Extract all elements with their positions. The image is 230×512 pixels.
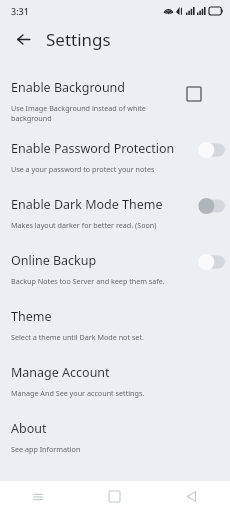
button[interactable]: Back [10,26,36,52]
staticText: Backup Notes too Server and keep them sa… [11,276,165,286]
button[interactable]: Theme [0,297,230,353]
staticText: About [11,420,47,437]
button[interactable]: Enable Background checkbox [185,85,203,103]
button[interactable]: Online Backup [0,241,230,297]
staticText: Theme [11,308,52,325]
staticText: Use a your password to protect your note… [11,164,155,174]
staticText: Makes layout darker for better read. (So… [11,220,157,230]
staticText: Online Backup [11,252,97,269]
staticText: Enable Password Protection [11,140,175,157]
button[interactable]: Enable Password Protection toggle [196,140,230,160]
staticText: Manage Account [11,364,110,381]
staticText: Settings [46,28,111,51]
staticText: Manage And See your account settings. [11,388,145,398]
staticText: Enable Dark Mode Theme [11,196,163,213]
staticText: 3:31 [11,5,29,17]
button[interactable]: About [0,409,230,465]
button[interactable]: Enable Password Protection [0,129,230,185]
staticText: Use Image Background instead of white ba… [11,103,186,123]
staticText: Enable Background [11,79,126,96]
button[interactable]: Home [76,481,153,512]
button[interactable]: Enable Dark Mode Theme toggle [196,196,230,216]
button[interactable]: Back [153,481,230,512]
button[interactable]: Enable Dark Mode Theme [0,185,230,241]
staticText: See app Information [11,444,81,454]
button[interactable]: Enable Background [0,73,230,129]
staticText: Select a theme until Dark Mode not set. [11,332,144,342]
button[interactable]: Manage Account [0,353,230,409]
button[interactable]: Online Backup toggle [196,252,230,272]
button[interactable]: Recents [0,481,76,512]
